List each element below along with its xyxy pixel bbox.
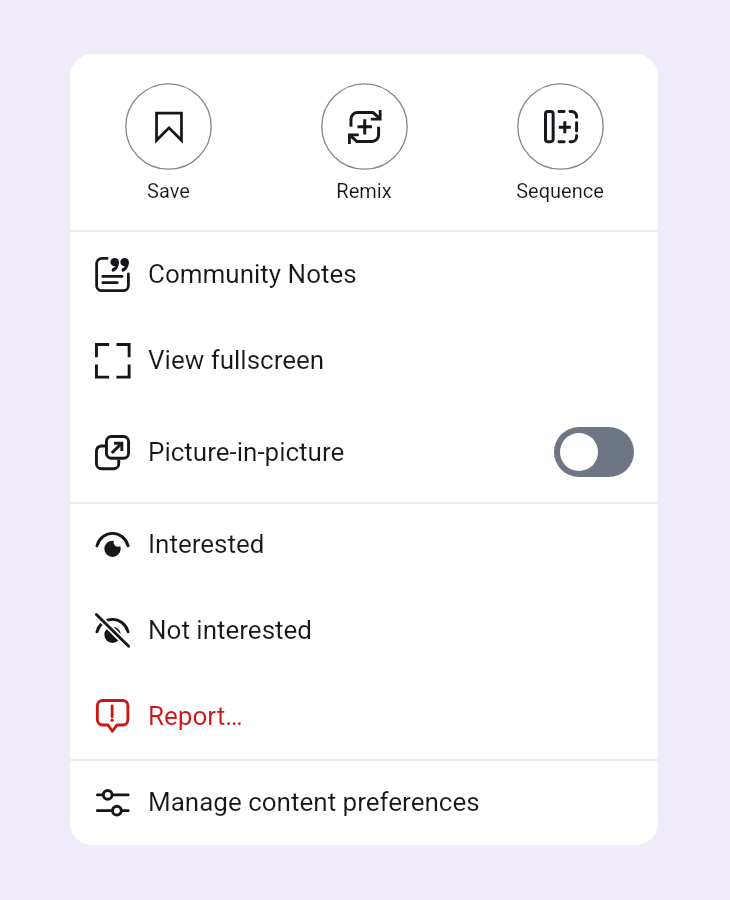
button[interactable]: Sequence	[462, 54, 658, 229]
staticText: View fullscreen	[148, 345, 325, 375]
button[interactable]: Report…	[70, 673, 658, 759]
button[interactable]: Picture-in-picture	[70, 409, 658, 495]
button[interactable]: Save	[70, 54, 266, 229]
staticText: Sequence	[516, 179, 604, 202]
button[interactable]: View fullscreen	[70, 317, 658, 403]
staticText: Interested	[148, 529, 265, 559]
staticText: Community Notes	[148, 259, 357, 289]
staticText: Not interested	[148, 615, 313, 645]
button[interactable]: Remix	[266, 54, 462, 229]
button[interactable]: Picture-in-picture, off	[554, 427, 634, 477]
staticText: Manage content preferences	[148, 787, 480, 817]
staticText: Picture-in-picture	[148, 437, 345, 467]
staticText: Save	[147, 179, 190, 202]
button[interactable]: Interested	[70, 501, 658, 587]
button[interactable]: Not interested	[70, 587, 658, 673]
staticText: Report…	[148, 701, 243, 731]
staticText: Remix	[336, 179, 392, 202]
button[interactable]: Community Notes	[70, 231, 658, 317]
button[interactable]: Manage content preferences	[70, 759, 658, 845]
